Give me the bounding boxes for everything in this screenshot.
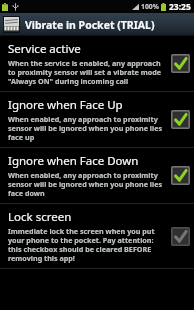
staticText: Ignore when Face Up (8, 97, 123, 113)
staticText: Ignore when Face Down (8, 153, 139, 169)
staticText: 100% (141, 2, 159, 11)
staticText: When enabled, any approach to proximity … (8, 170, 167, 198)
button[interactable]: Ignore when Face Up (0, 92, 194, 147)
staticText: Service active (8, 41, 81, 57)
button[interactable]: Toggle checkbox (171, 227, 190, 246)
button[interactable]: Ignore when Face Down (0, 148, 194, 203)
staticText: 23:25 (169, 1, 191, 13)
staticText: When enabled, any approach to proximity … (8, 114, 167, 142)
staticText: Immediate lock the screen when you put y… (8, 226, 167, 263)
button[interactable]: Toggle checkbox (171, 166, 190, 185)
button[interactable]: Toggle checkbox (171, 110, 190, 129)
button[interactable]: Lock screen (0, 204, 194, 268)
button[interactable]: Service active (0, 36, 194, 91)
staticText: Vibrate in Pocket (TRIAL) (25, 18, 155, 32)
staticText: Lock screen (8, 209, 72, 225)
button[interactable]: Toggle checkbox (171, 54, 190, 73)
staticText: When the service is enabled, any approac… (8, 58, 167, 86)
